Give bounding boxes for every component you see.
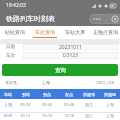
staticText: 09:48 — [64, 102, 75, 107]
staticText: 20231011 — [59, 44, 82, 50]
staticText: 发点 — [65, 92, 73, 97]
button[interactable]: 杭州 — [0, 113, 120, 120]
staticText: 上海 — [4, 102, 12, 107]
button[interactable]: 上海 — [0, 99, 120, 112]
staticText: 所属省 — [83, 92, 95, 97]
staticText: 车次 — [6, 53, 18, 59]
staticText: 正晚点查询 — [93, 29, 118, 35]
staticText: 车次查询 — [35, 29, 55, 35]
button[interactable]: 车次查询 — [30, 26, 60, 39]
staticText: 上海 — [106, 113, 114, 118]
staticText: 所属局 — [104, 92, 116, 97]
button[interactable]: More options — [89, 14, 120, 24]
staticText: CMCC_U2B — [96, 80, 115, 85]
button[interactable]: 查询 — [2, 64, 118, 76]
staticText: 铁路列车时刻表 — [6, 14, 55, 23]
staticText: 车站大屏 — [65, 29, 85, 35]
staticText: 站站查询 — [5, 29, 25, 35]
staticText: 浙江 — [85, 102, 93, 107]
staticText: 杭州 — [4, 113, 12, 118]
button[interactable]: 正晚点查询 — [90, 26, 120, 39]
staticText: 10:15 — [42, 113, 53, 118]
button[interactable]: 日期 — [0, 44, 120, 50]
button[interactable]: 站站查询 — [0, 26, 30, 39]
staticText: 浙江 — [85, 113, 93, 118]
staticText: 车次号 — [5, 80, 17, 85]
staticText: 上海 — [106, 102, 114, 107]
button[interactable]: 车次 — [0, 52, 120, 59]
staticText: 10:12 — [20, 113, 31, 118]
staticText: 09:23 — [20, 102, 31, 107]
staticText: 19:42:03 — [6, 2, 26, 9]
staticText: 查询 — [55, 67, 66, 74]
button[interactable]: 车站大屏 — [60, 26, 90, 39]
staticText: 到点 — [43, 92, 51, 97]
staticText: 上海 — [42, 80, 50, 85]
staticText: D3123 — [63, 52, 79, 59]
staticText: 车站 — [4, 92, 12, 97]
staticText: 到站 — [22, 92, 30, 97]
staticText: 09:42 — [42, 102, 53, 107]
staticText: 10:18 — [64, 113, 75, 118]
staticText: 日期 — [6, 44, 18, 50]
